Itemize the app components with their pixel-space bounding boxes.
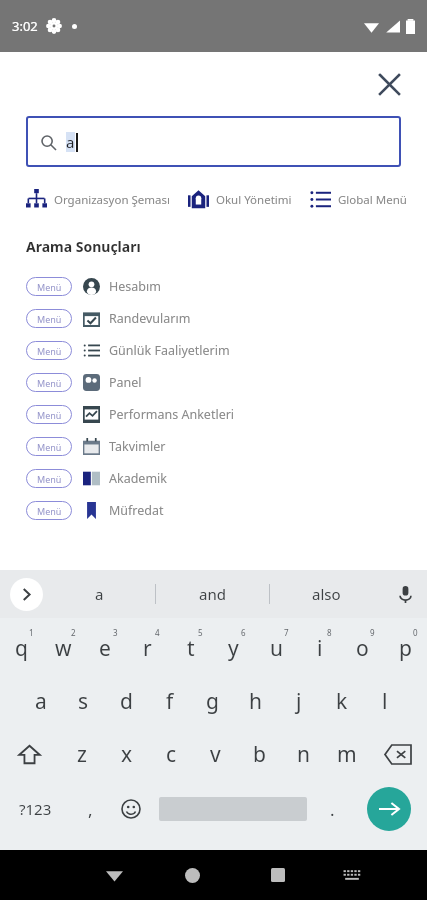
staticText: Hesabım: [109, 278, 161, 295]
button[interactable]: 4: [126, 622, 169, 675]
button[interactable]: l: [363, 675, 406, 728]
staticText: z: [77, 740, 87, 769]
staticText: f: [166, 687, 174, 716]
button[interactable]: d: [105, 675, 148, 728]
button[interactable]: Menü: [26, 302, 427, 334]
button[interactable]: b: [237, 728, 281, 781]
button[interactable]: a: [20, 675, 62, 728]
button[interactable]: Back: [79, 850, 150, 900]
button[interactable]: c: [149, 728, 193, 781]
button[interactable]: j: [277, 675, 320, 728]
staticText: .: [330, 798, 335, 821]
staticText: l: [382, 687, 388, 716]
button[interactable]: g: [191, 675, 234, 728]
staticText: Menü: [37, 473, 62, 485]
staticText: Menü: [37, 313, 62, 325]
button[interactable]: m: [325, 728, 369, 781]
staticText: 5: [198, 627, 203, 638]
button[interactable]: Menü: [26, 430, 427, 462]
button[interactable]: Menü: [26, 462, 427, 494]
button[interactable]: n: [281, 728, 325, 781]
button[interactable]: also: [270, 570, 383, 618]
staticText: ?123: [19, 799, 52, 819]
button[interactable]: Menü: [26, 494, 427, 526]
button[interactable]: Emoji: [109, 781, 152, 837]
button[interactable]: .: [313, 781, 351, 837]
staticText: k: [336, 687, 348, 716]
staticText: Takvimler: [109, 438, 166, 455]
staticText: Menü: [37, 281, 62, 293]
staticText: g: [206, 687, 219, 716]
button[interactable]: a: [43, 570, 155, 618]
button[interactable]: Shift: [0, 728, 59, 781]
staticText: Menü: [37, 409, 62, 421]
staticText: 7: [284, 627, 289, 638]
staticText: o: [356, 634, 369, 663]
button[interactable]: a: [26, 116, 401, 167]
staticText: 3: [113, 627, 118, 638]
button[interactable]: 0: [384, 622, 427, 675]
button[interactable]: 1: [0, 622, 42, 675]
staticText: Müfredat: [109, 502, 164, 519]
staticText: e: [99, 634, 111, 663]
button[interactable]: x: [104, 728, 149, 781]
button[interactable]: Space: [152, 781, 313, 837]
button[interactable]: Menü: [26, 334, 427, 366]
button[interactable]: Okul Yönetimi: [188, 189, 292, 210]
staticText: Akademik: [109, 470, 168, 487]
staticText: u: [270, 634, 283, 663]
staticText: 3:02: [12, 17, 38, 35]
button[interactable]: ?123: [0, 781, 71, 837]
staticText: 2: [71, 627, 76, 638]
button[interactable]: v: [193, 728, 237, 781]
button[interactable]: and: [156, 570, 269, 618]
button[interactable]: h: [234, 675, 277, 728]
button[interactable]: More suggestions: [10, 578, 43, 611]
staticText: ,: [88, 798, 93, 821]
button[interactable]: Enter: [351, 781, 427, 837]
button[interactable]: Close: [369, 64, 409, 104]
button[interactable]: f: [148, 675, 191, 728]
staticText: d: [120, 687, 133, 716]
button[interactable]: 6: [212, 622, 255, 675]
button[interactable]: ,: [71, 781, 109, 837]
staticText: 4: [155, 627, 160, 638]
staticText: y: [228, 634, 239, 663]
staticText: 9: [370, 627, 375, 638]
button[interactable]: 3: [84, 622, 126, 675]
button[interactable]: Menü: [26, 366, 427, 398]
button[interactable]: 9: [341, 622, 384, 675]
button[interactable]: Menü: [26, 398, 427, 430]
staticText: a: [35, 687, 47, 716]
button[interactable]: Recents: [235, 850, 320, 900]
staticText: Arama Sonuçları: [26, 237, 141, 256]
staticText: Menü: [37, 345, 62, 357]
button[interactable]: Voice input: [383, 570, 427, 618]
staticText: Menü: [37, 441, 62, 453]
button[interactable]: Home: [150, 850, 235, 900]
staticText: h: [249, 687, 262, 716]
button[interactable]: 7: [255, 622, 298, 675]
staticText: 0: [413, 627, 418, 638]
button[interactable]: 8: [298, 622, 341, 675]
button[interactable]: s: [62, 675, 105, 728]
button[interactable]: Backspace: [369, 728, 427, 781]
button[interactable]: k: [320, 675, 363, 728]
staticText: Organizasyon Şeması: [54, 192, 170, 208]
staticText: w: [55, 634, 72, 663]
button[interactable]: Global Menü: [310, 189, 407, 210]
button[interactable]: Switch keyboard: [320, 850, 384, 900]
button[interactable]: Organizasyon Şeması: [26, 189, 170, 210]
staticText: Menü: [37, 505, 62, 517]
staticText: m: [337, 740, 357, 769]
button[interactable]: z: [59, 728, 104, 781]
staticText: j: [296, 687, 302, 716]
staticText: Okul Yönetimi: [216, 192, 292, 208]
button[interactable]: Menü: [26, 270, 427, 302]
button[interactable]: 2: [42, 622, 84, 675]
staticText: Performans Anketleri: [109, 406, 235, 423]
staticText: c: [166, 740, 177, 769]
staticText: 8: [327, 627, 332, 638]
button[interactable]: 5: [169, 622, 212, 675]
staticText: r: [143, 634, 152, 663]
